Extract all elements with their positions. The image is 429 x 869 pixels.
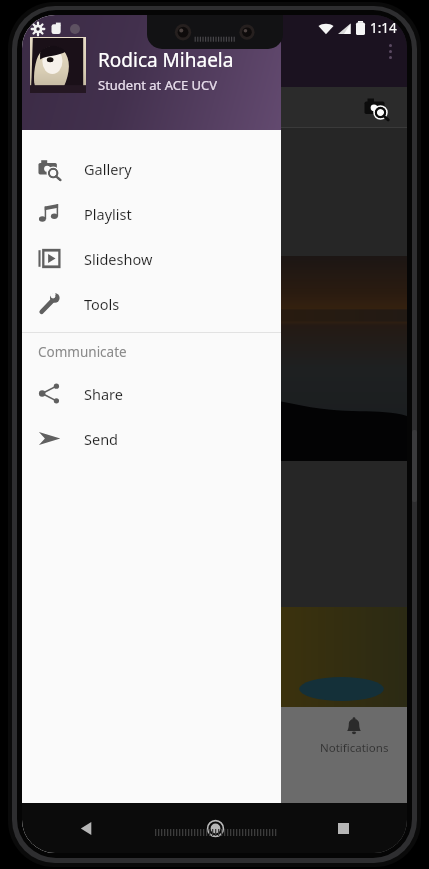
button[interactable]: Gallery	[22, 146, 281, 191]
button[interactable]: Recent apps	[279, 803, 407, 853]
button[interactable]: Playlist	[22, 191, 281, 236]
staticText: Playlist	[84, 204, 132, 224]
staticText: Communicate	[38, 343, 127, 361]
button[interactable]: Tools	[22, 281, 281, 326]
staticText: Tools	[84, 294, 120, 314]
staticText: Gallery	[84, 159, 132, 179]
button[interactable]: Notifications	[301, 715, 407, 756]
staticText: Rodica Mihaela	[98, 47, 234, 73]
button[interactable]: Share	[22, 371, 281, 416]
button[interactable]: Profile photo	[30, 37, 86, 93]
button[interactable]: Send	[22, 416, 281, 461]
button[interactable]: Back	[22, 803, 151, 853]
staticText: Notifications	[320, 740, 389, 756]
staticText: Slideshow	[84, 249, 153, 269]
button[interactable]: Home	[151, 803, 279, 853]
staticText: o reset	[28, 220, 80, 242]
button[interactable]: Slideshow	[22, 236, 281, 281]
staticText: Student at ACE UCV	[98, 76, 218, 94]
staticText: 1:14	[370, 19, 397, 37]
staticText: Send	[84, 429, 119, 449]
button[interactable]: Search photos	[359, 90, 393, 124]
staticText: Share	[84, 384, 123, 404]
